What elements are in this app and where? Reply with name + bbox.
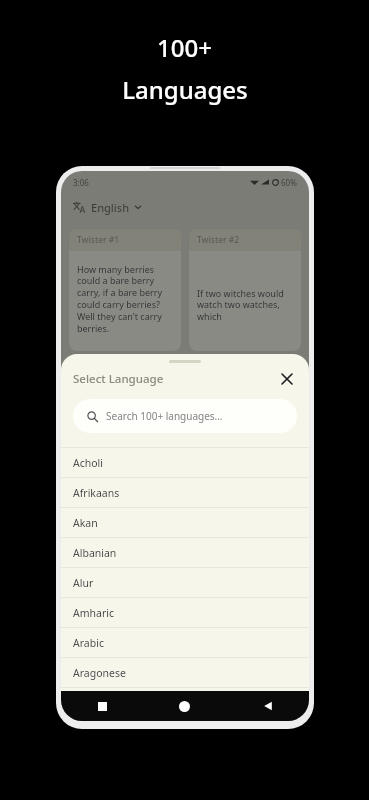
button[interactable]: Twister #2: [189, 229, 301, 351]
button[interactable]: Aragonese: [61, 658, 309, 687]
staticText: Albanian: [73, 546, 117, 560]
staticText: Arabic: [73, 636, 104, 650]
button[interactable]: Arabic: [61, 628, 309, 657]
other: Translate: [73, 201, 85, 213]
button[interactable]: Albanian: [61, 538, 309, 567]
staticText: Akan: [73, 516, 98, 530]
button[interactable]: Home: [143, 691, 226, 721]
button[interactable]: Close: [277, 369, 297, 389]
staticText: Aragonese: [73, 666, 126, 680]
staticText: 100+: [157, 31, 212, 64]
button[interactable]: Alur: [61, 568, 309, 597]
staticText: Alur: [73, 576, 94, 590]
staticText: Search 100+ languages…: [106, 409, 223, 423]
button[interactable]: Back: [226, 691, 309, 721]
staticText: Twister #1: [77, 234, 120, 246]
button[interactable]: Amharic: [61, 598, 309, 627]
button[interactable]: Akan: [61, 508, 309, 537]
button[interactable]: Search 100+ languages…: [73, 399, 297, 433]
staticText: Afrikaans: [73, 486, 120, 500]
staticText: English: [91, 200, 130, 215]
button[interactable]: Twister #1: [69, 229, 181, 351]
staticText: Languages: [122, 73, 248, 106]
button[interactable]: Recents: [61, 691, 143, 721]
staticText: 60%: [281, 177, 297, 188]
staticText: Twister #2: [197, 234, 240, 246]
staticText: 3:06: [73, 177, 89, 188]
staticText: If two witches would watch two watches, …: [197, 287, 293, 323]
staticText: Select Language: [73, 371, 164, 387]
staticText: How many berries could a bare berry carr…: [77, 263, 173, 335]
button[interactable]: Acholi: [61, 448, 309, 477]
button[interactable]: Translate: [61, 193, 309, 221]
staticText: Acholi: [73, 456, 104, 470]
button[interactable]: Afrikaans: [61, 478, 309, 507]
staticText: Amharic: [73, 606, 114, 620]
